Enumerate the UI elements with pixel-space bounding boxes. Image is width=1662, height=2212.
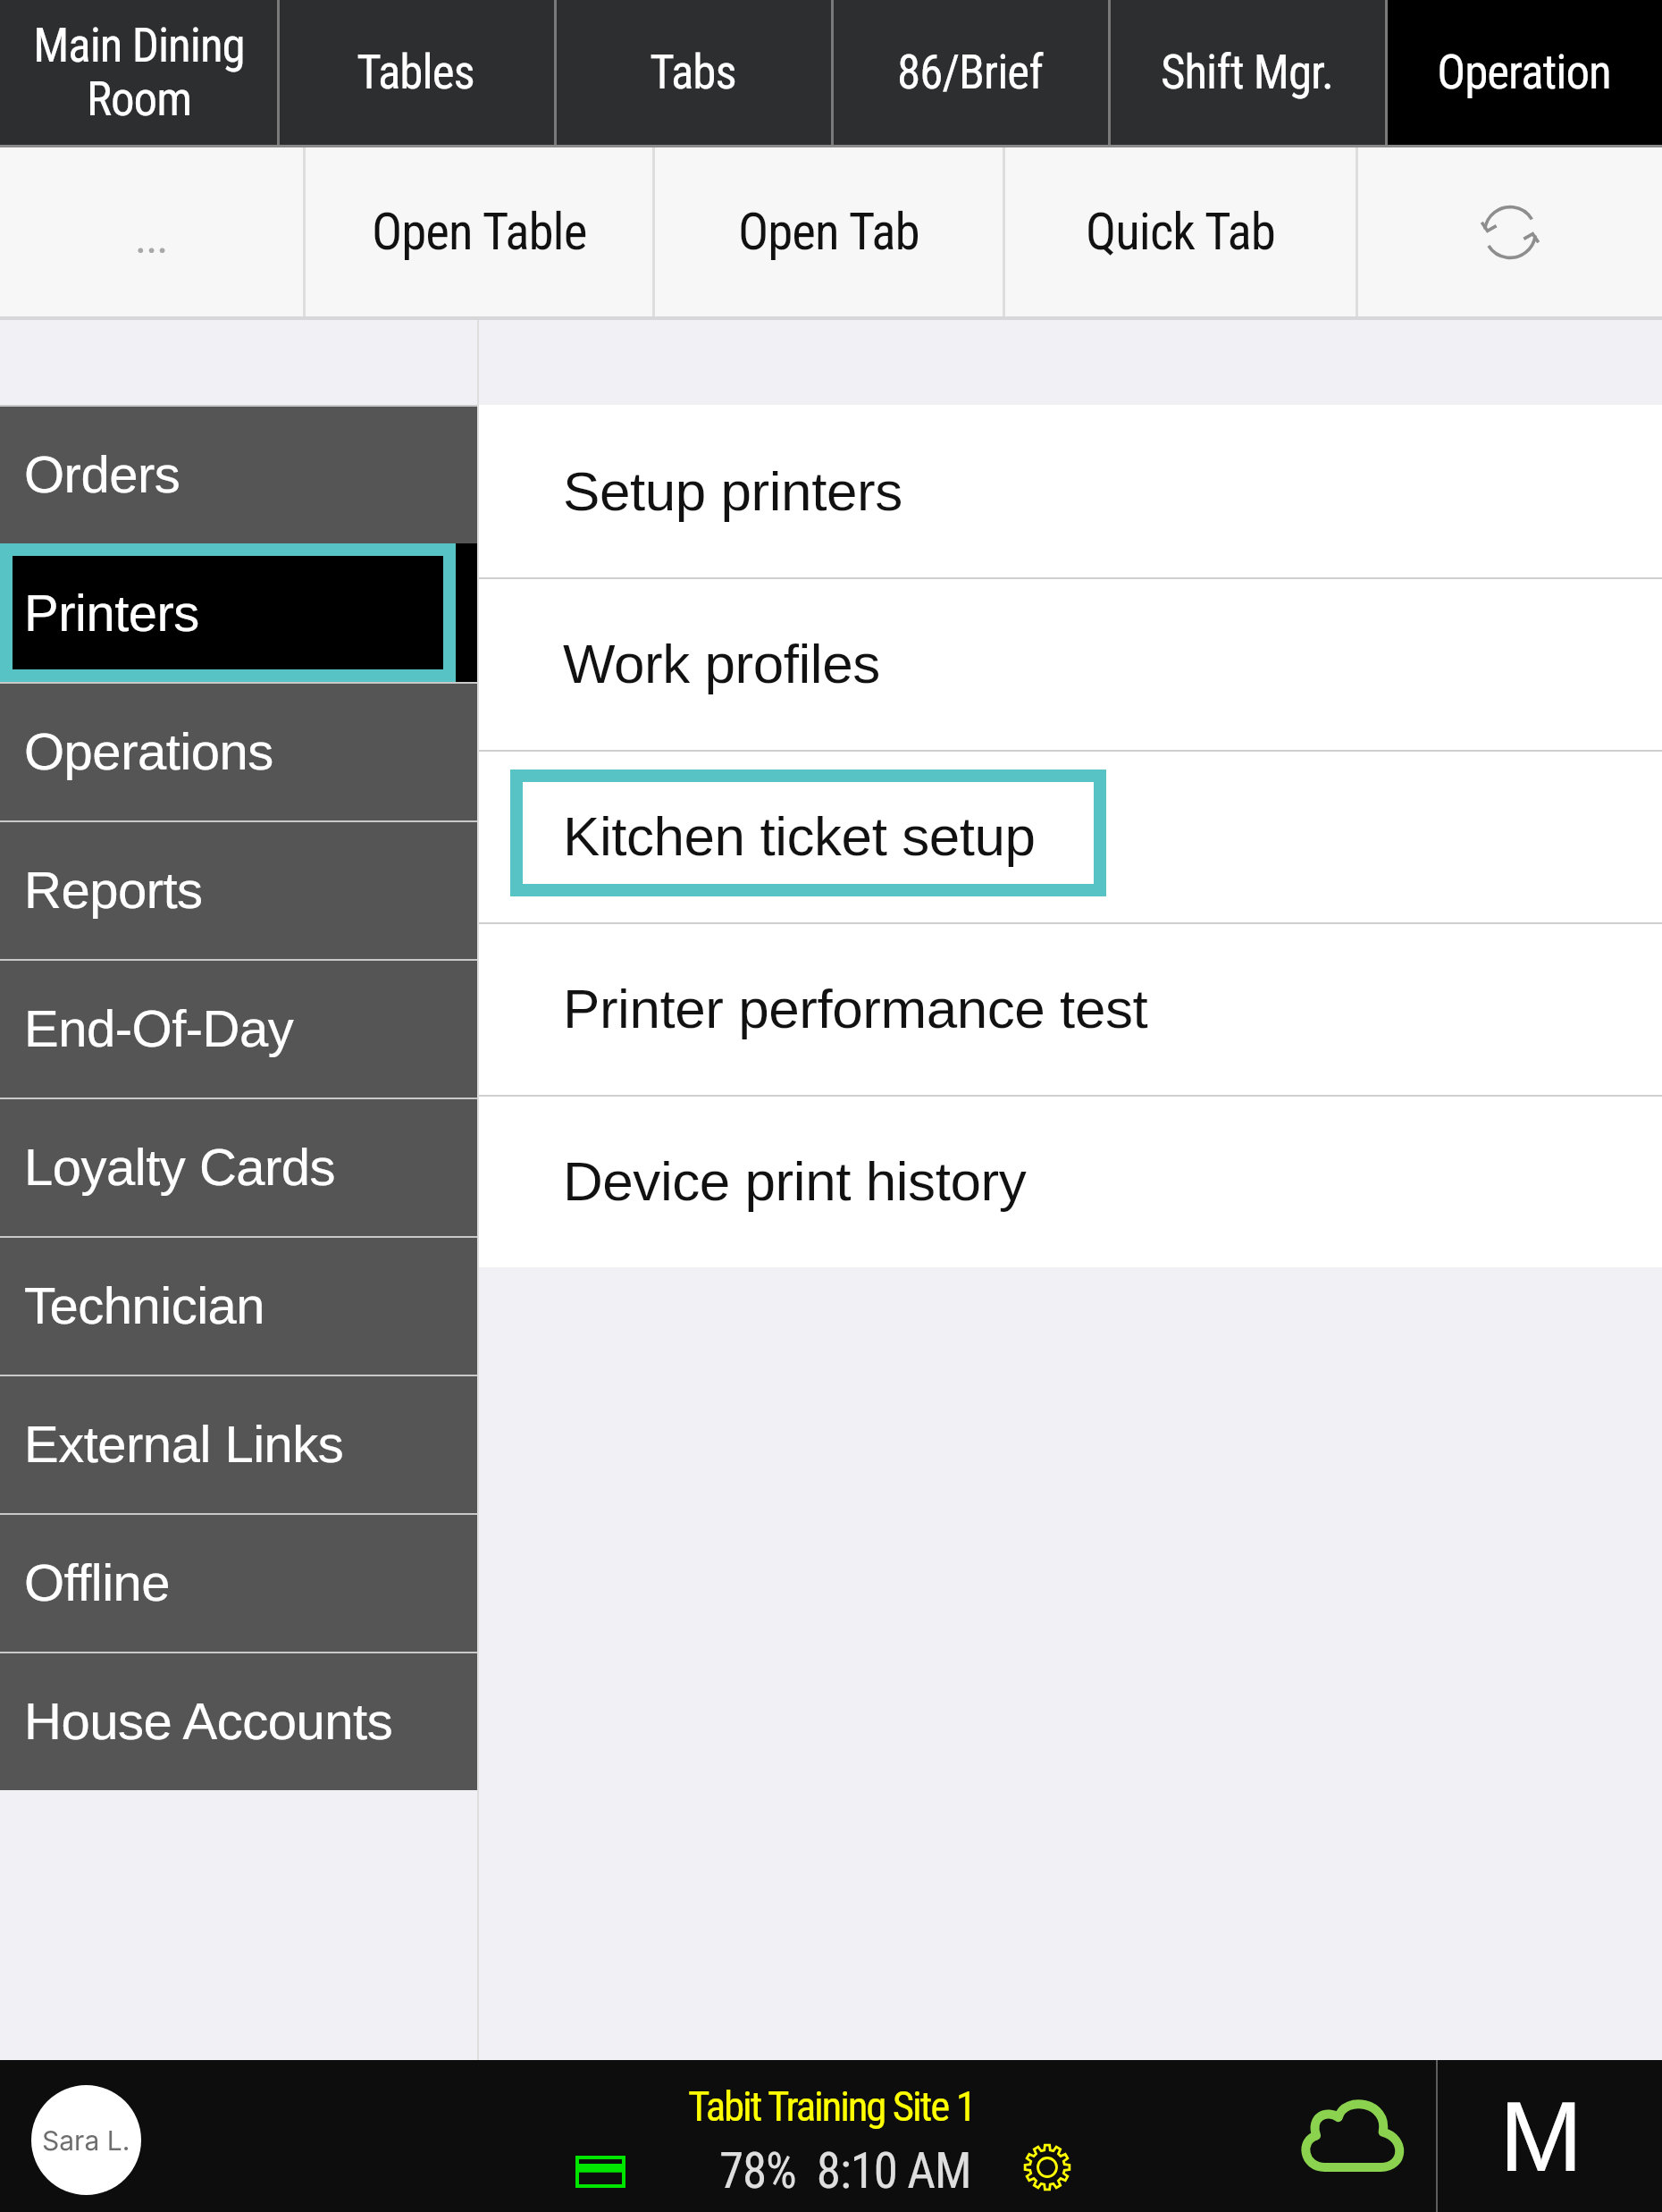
staticText: Open Table <box>372 202 587 262</box>
button[interactable]: Main Dining Room <box>0 0 277 145</box>
staticText: Device print history <box>563 1150 1027 1212</box>
button[interactable]: End-Of-Day <box>0 959 477 1098</box>
button[interactable]: Kitchen ticket setup <box>479 750 1662 922</box>
button[interactable]: Reports <box>0 820 477 959</box>
button[interactable]: 86/Brief <box>831 0 1108 145</box>
button[interactable]: Tables <box>277 0 554 145</box>
button[interactable]: Cloud sync status <box>1273 2058 1432 2210</box>
button[interactable]: Setup printers <box>479 405 1662 577</box>
staticText: Main Dining Room <box>33 18 245 127</box>
staticText: M <box>1499 2081 1583 2192</box>
staticText: Tables <box>357 45 474 100</box>
staticText: Shift Mgr. <box>1161 45 1333 100</box>
button[interactable]: Settings <box>1023 2143 1071 2191</box>
staticText: End-Of-Day <box>24 999 294 1057</box>
staticText: Printer performance test <box>563 978 1148 1039</box>
staticText: 78% 8:10 AM <box>719 2142 971 2199</box>
staticText: Offline <box>24 1553 171 1611</box>
staticText: Tabs <box>650 45 736 100</box>
staticText: Tabit Training Site 1 <box>688 2082 975 2131</box>
button[interactable]: Open Table <box>306 147 652 316</box>
button[interactable]: House Accounts <box>0 1652 477 1790</box>
staticText: ... <box>135 212 168 265</box>
button[interactable]: Orders <box>0 405 477 543</box>
staticText: Operation <box>1437 45 1611 100</box>
staticText: Setup printers <box>563 460 902 522</box>
button[interactable]: Printer performance test <box>479 922 1662 1095</box>
button[interactable]: External Links <box>0 1375 477 1513</box>
staticText: Quick Tab <box>1086 202 1275 262</box>
staticText: Technician <box>24 1276 265 1334</box>
button[interactable]: ... <box>0 147 303 316</box>
button[interactable]: Offline <box>0 1513 477 1652</box>
button[interactable]: Sara L. <box>31 2085 141 2195</box>
staticText: Work profiles <box>563 633 880 694</box>
button[interactable]: Device print history <box>479 1095 1662 1267</box>
staticText: Operations <box>24 722 273 780</box>
staticText: Open Tab <box>738 202 919 262</box>
staticText: 86/Brief <box>897 45 1043 100</box>
button[interactable]: Tabs <box>554 0 831 145</box>
staticText: Kitchen ticket setup <box>563 805 1036 867</box>
staticText: House Accounts <box>24 1692 393 1750</box>
button[interactable]: Work profiles <box>479 577 1662 750</box>
button[interactable]: Printers <box>0 543 477 682</box>
button[interactable]: Refresh <box>1358 147 1662 316</box>
button[interactable]: Technician <box>0 1236 477 1375</box>
button[interactable]: Shift Mgr. <box>1108 0 1385 145</box>
staticText: Orders <box>24 445 180 503</box>
staticText: External Links <box>24 1415 344 1473</box>
staticText: Printers <box>24 584 199 642</box>
button[interactable]: M <box>1429 2060 1653 2212</box>
staticText: Loyalty Cards <box>24 1138 336 1196</box>
button[interactable]: Operation <box>1385 0 1662 145</box>
staticText: Reports <box>24 861 203 919</box>
button[interactable]: Loyalty Cards <box>0 1098 477 1236</box>
button[interactable]: Quick Tab <box>1005 147 1356 316</box>
button[interactable]: Operations <box>0 682 477 820</box>
button[interactable]: Open Tab <box>655 147 1003 316</box>
staticText: Sara L. <box>42 2124 130 2157</box>
